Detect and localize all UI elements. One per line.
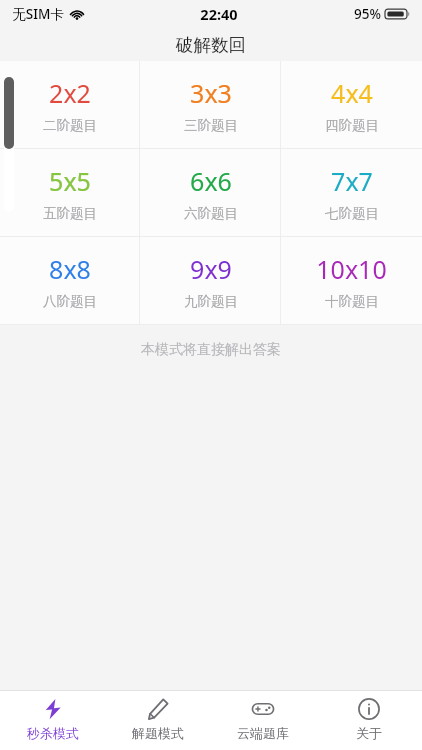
staticText: 5x5 bbox=[49, 164, 91, 198]
staticText: 2x2 bbox=[49, 76, 91, 110]
button[interactable]: 4x4 bbox=[281, 61, 422, 148]
button[interactable]: 9x9 bbox=[140, 237, 281, 324]
staticText: 云端题库 bbox=[237, 725, 289, 741]
staticText: 五阶题目 bbox=[43, 205, 97, 222]
staticText: 七阶题目 bbox=[325, 205, 379, 222]
staticText: 八阶题目 bbox=[43, 293, 97, 310]
button[interactable]: 云端题库 bbox=[210, 691, 316, 750]
staticText: 3x3 bbox=[190, 76, 232, 110]
button[interactable]: 10x10 bbox=[281, 237, 422, 324]
staticText: 关于 bbox=[356, 725, 382, 741]
button[interactable]: 3x3 bbox=[140, 61, 281, 148]
other: 关于 bbox=[357, 697, 381, 721]
other: 秒杀模式 bbox=[41, 697, 65, 721]
other: 解题模式 bbox=[146, 697, 170, 721]
staticText: 二阶题目 bbox=[43, 117, 97, 134]
staticText: 7x7 bbox=[331, 164, 373, 198]
staticText: 三阶题目 bbox=[184, 117, 238, 134]
staticText: 六阶题目 bbox=[184, 205, 238, 222]
button[interactable]: 秒杀模式 bbox=[0, 691, 105, 750]
staticText: 九阶题目 bbox=[184, 293, 238, 310]
staticText: 8x8 bbox=[49, 252, 91, 286]
staticText: 四阶题目 bbox=[325, 117, 379, 134]
staticText: 4x4 bbox=[331, 76, 373, 110]
staticText: 22:40 bbox=[200, 4, 238, 24]
staticText: 解题模式 bbox=[132, 725, 184, 741]
button[interactable]: 6x6 bbox=[140, 149, 281, 236]
other: 云端题库 bbox=[251, 697, 275, 721]
staticText: 10x10 bbox=[316, 252, 387, 286]
staticText: 95% bbox=[354, 5, 381, 23]
button[interactable]: 8x8 bbox=[0, 237, 140, 324]
staticText: 9x9 bbox=[190, 252, 232, 286]
button[interactable]: 5x5 bbox=[0, 149, 140, 236]
staticText: 破解数回 bbox=[176, 34, 246, 56]
staticText: 6x6 bbox=[190, 164, 232, 198]
button[interactable]: 7x7 bbox=[281, 149, 422, 236]
staticText: 十阶题目 bbox=[325, 293, 379, 310]
staticText: 无SIM卡 bbox=[12, 5, 64, 23]
button[interactable]: 2x2 bbox=[0, 61, 140, 148]
staticText: 秒杀模式 bbox=[27, 725, 79, 741]
button[interactable]: 解题模式 bbox=[105, 691, 210, 750]
staticText: 本模式将直接解出答案 bbox=[141, 341, 281, 359]
button[interactable]: 关于 bbox=[316, 691, 422, 750]
